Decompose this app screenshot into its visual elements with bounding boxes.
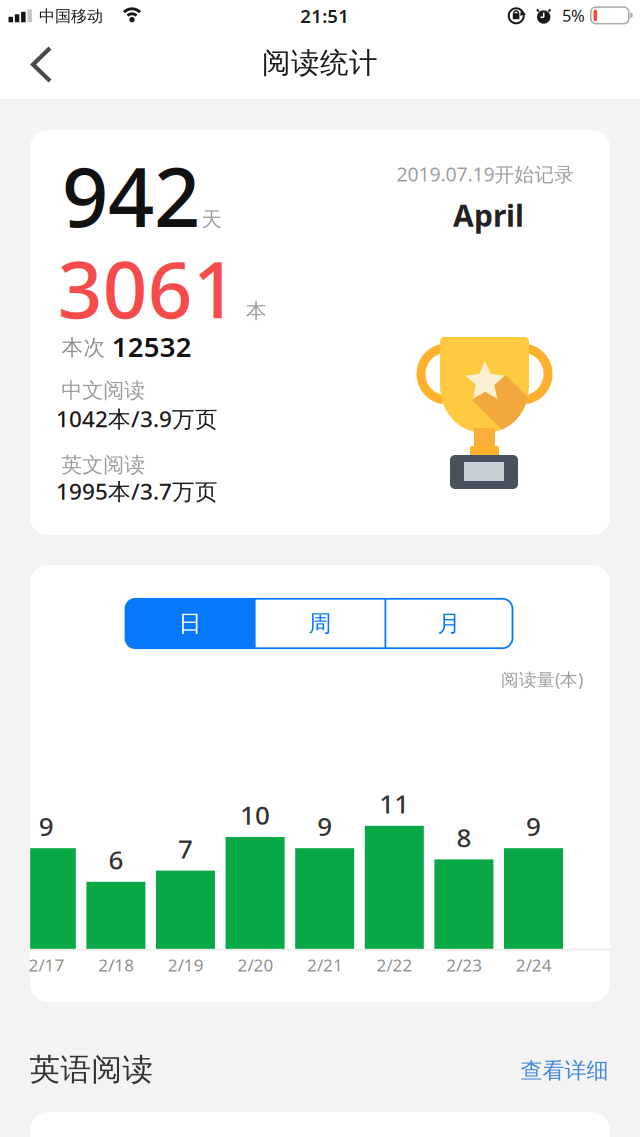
staticText: 2/24	[516, 953, 552, 977]
button[interactable]: 日	[125, 599, 255, 648]
button[interactable]: 周	[255, 599, 385, 648]
staticText: 2/20	[237, 953, 273, 977]
staticText: 查看详细	[520, 1057, 608, 1084]
staticText: 日	[178, 609, 201, 638]
staticText: 2/21	[307, 953, 343, 977]
staticText: 1042本/3.9万页	[56, 403, 218, 434]
staticText: 1995本/3.7万页	[56, 476, 218, 506]
staticText: 9	[39, 808, 54, 844]
staticText: 2/17	[29, 953, 65, 977]
staticText: 月	[437, 609, 460, 638]
staticText: 本	[246, 298, 267, 324]
staticText: April	[453, 195, 524, 235]
staticText: 12532	[112, 328, 192, 365]
staticText: 3061	[58, 235, 238, 341]
staticText: 10	[240, 797, 270, 832]
staticText: 英文阅读	[61, 452, 145, 478]
staticText: 942	[62, 140, 200, 251]
staticText: 7	[178, 831, 193, 866]
staticText: 2/19	[168, 953, 204, 977]
staticText: 本次	[62, 334, 106, 361]
staticText: 2/22	[377, 953, 413, 977]
staticText: 阅读统计	[262, 45, 378, 81]
staticText: 中国移动	[39, 6, 103, 26]
staticText: 英语阅读	[30, 1050, 154, 1089]
button[interactable]: 月	[384, 599, 514, 648]
staticText: 11	[379, 786, 409, 821]
staticText: 8	[456, 819, 471, 855]
staticText: 2/18	[98, 953, 134, 977]
staticText: 天	[201, 207, 222, 232]
button[interactable]: 查看详细	[514, 1051, 614, 1090]
staticText: 9	[317, 808, 332, 844]
staticText: 9	[526, 808, 541, 844]
staticText: 2019.07.19开始记录	[396, 161, 574, 187]
button[interactable]: Back	[19, 42, 63, 86]
staticText: 周	[308, 609, 331, 638]
staticText: 21:51	[300, 3, 349, 28]
staticText: 中文阅读	[61, 377, 145, 404]
staticText: 阅读量(本)	[501, 667, 583, 691]
staticText: 5%	[562, 4, 585, 27]
staticText: 6	[108, 842, 123, 877]
staticText: 2/23	[446, 953, 482, 977]
